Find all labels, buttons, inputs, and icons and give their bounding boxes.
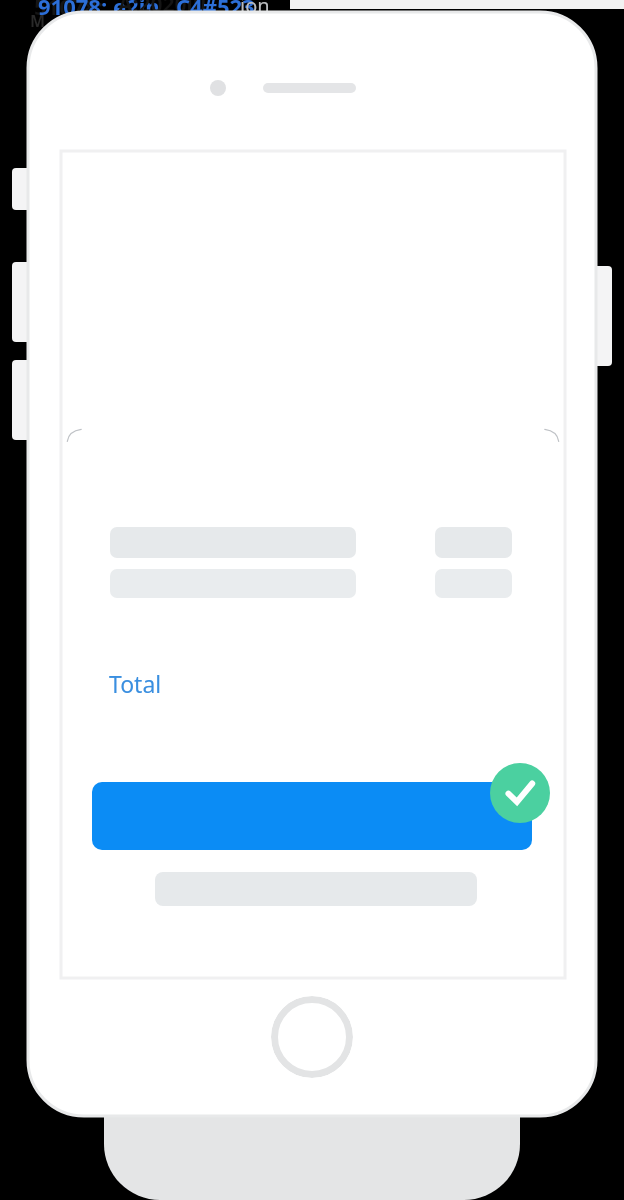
staticText: M [30,10,46,32]
staticText: Total [109,668,162,699]
staticText: A:2020ju [118,0,207,19]
staticText: C4#523 [176,0,255,21]
button[interactable]: Home [271,996,353,1078]
button[interactable]: Payment successful [490,763,550,823]
staticText: ion [240,0,270,19]
button[interactable]: Total [109,668,162,699]
staticText: 91078; e2in [38,0,160,21]
button[interactable]: Confirm payment [92,782,532,850]
staticText: 51078; [34,0,104,21]
